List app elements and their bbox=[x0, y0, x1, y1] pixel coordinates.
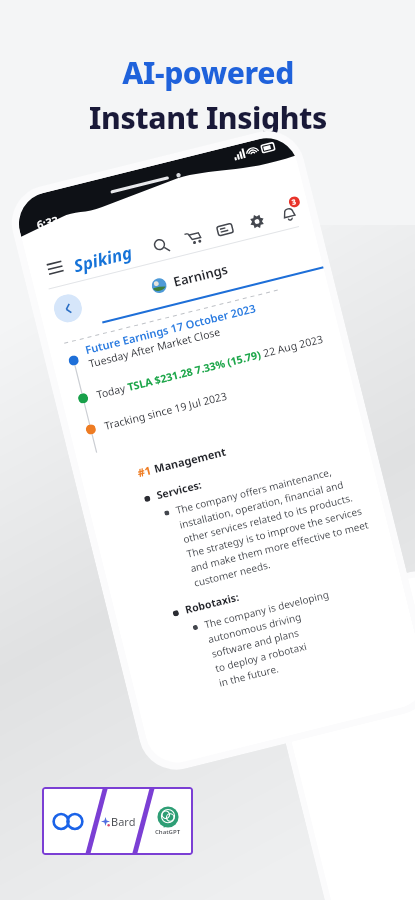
staticText: 22 Aug 2023 bbox=[259, 332, 324, 361]
staticText: AI-powered bbox=[122, 52, 294, 93]
staticText: Milestones bbox=[296, 619, 358, 648]
staticText: Instant Insights bbox=[89, 97, 327, 138]
staticText: Tracking since 19 Jul 2023 bbox=[103, 389, 228, 433]
button[interactable]: Settings bbox=[243, 208, 270, 234]
staticText: Tuesday After Market Close bbox=[87, 324, 222, 371]
button[interactable]: Menu bbox=[39, 252, 70, 283]
staticText: #2 bbox=[280, 633, 300, 652]
staticText: The company is developing autonomous dri… bbox=[203, 587, 345, 690]
button[interactable]: Cart bbox=[179, 224, 206, 250]
staticText: Future Earnings 17 October 2023 bbox=[84, 300, 257, 357]
staticText: The company offers maintenance, installa… bbox=[174, 456, 384, 590]
button[interactable]: Search bbox=[147, 232, 174, 258]
staticText: ChatGPT bbox=[155, 828, 181, 836]
staticText: #1 bbox=[136, 461, 156, 480]
staticText: Services: bbox=[155, 477, 203, 502]
button[interactable]: Powered by Meta, Bard and ChatGPT bbox=[42, 787, 193, 855]
staticText: Spiking bbox=[71, 240, 135, 277]
staticText: Bard bbox=[111, 814, 136, 829]
button[interactable]: News bbox=[211, 216, 238, 242]
staticText: Today bbox=[95, 380, 129, 402]
staticText: Management bbox=[152, 444, 228, 476]
button[interactable]: Back bbox=[51, 291, 85, 325]
staticText: TSLA $231.28 7.33% (15.79) bbox=[126, 347, 262, 394]
staticText: Robotaxis: bbox=[184, 590, 240, 617]
staticText: 3 bbox=[291, 197, 298, 208]
staticText: 6:33 bbox=[35, 212, 60, 232]
button[interactable]: Notifications bbox=[275, 200, 302, 226]
button[interactable]: #1 bbox=[120, 400, 415, 759]
button[interactable]: Earnings bbox=[171, 260, 230, 291]
